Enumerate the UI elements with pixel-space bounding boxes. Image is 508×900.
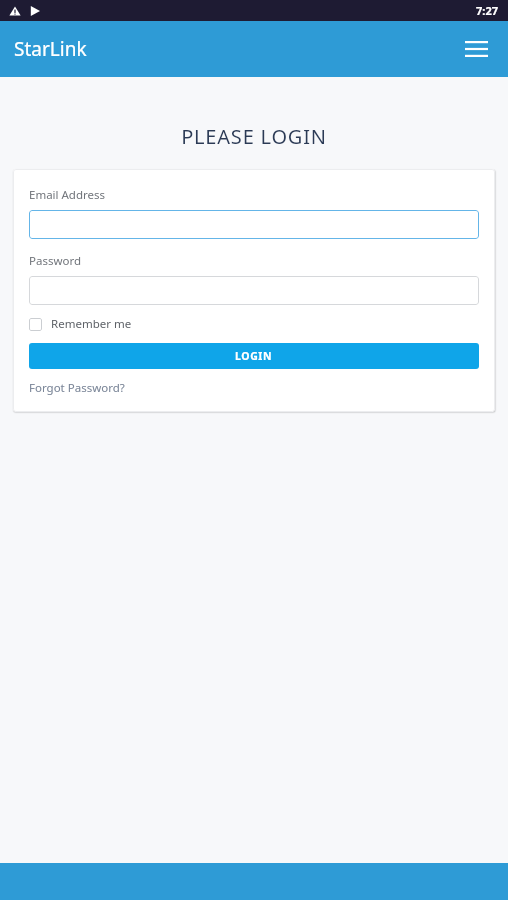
button[interactable]: Remember me: [29, 316, 132, 332]
button[interactable]: [29, 210, 479, 239]
button[interactable]: Forgot Password?: [29, 380, 125, 396]
button[interactable]: LOGIN: [29, 343, 479, 369]
staticText: Email Address: [29, 187, 106, 203]
staticText: Password: [29, 253, 82, 269]
staticText: StarLink: [14, 36, 87, 62]
button[interactable]: Menu: [454, 27, 498, 71]
staticText: Remember me: [51, 316, 132, 332]
button[interactable]: [29, 276, 479, 305]
staticText: 7:27: [476, 3, 498, 18]
staticText: PLEASE LOGIN: [0, 123, 508, 150]
staticText: LOGIN: [235, 349, 273, 363]
